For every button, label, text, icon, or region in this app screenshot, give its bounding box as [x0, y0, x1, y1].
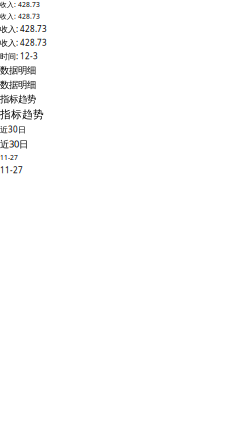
staticText: 近30日 — [0, 138, 28, 150]
staticText: 收入: 428.73 — [0, 37, 47, 48]
staticText: 指标趋势 — [0, 108, 44, 121]
staticText: 指标趋势 — [0, 93, 36, 105]
staticText: 11-27 — [0, 165, 23, 175]
staticText: 数据明细 — [0, 79, 36, 90]
staticText: 时间: 12-3 — [0, 51, 38, 62]
staticText: 11-27 — [0, 153, 18, 162]
staticText: 收入: 428.73 — [0, 24, 47, 34]
staticText: 近30日 — [0, 124, 26, 135]
staticText: 数据明细 — [0, 65, 36, 76]
staticText: 收入: 428.73 — [0, 12, 40, 21]
staticText: 收入: 428.73 — [0, 0, 40, 9]
